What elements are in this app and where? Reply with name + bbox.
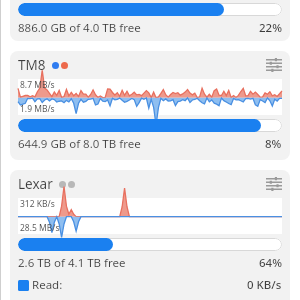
staticText: Lexar [18, 175, 53, 193]
button[interactable]: Lexar [18, 175, 282, 193]
button[interactable]: Settings [266, 57, 282, 73]
button[interactable]: 2.6 TB of 4.1 TB free [18, 255, 282, 271]
button[interactable] [18, 3, 282, 16]
staticText: 886.0 GB of 4.0 TB free [18, 20, 141, 36]
staticText: 312 KB/s [20, 198, 55, 210]
staticText: 1.9 MB/s [20, 103, 55, 115]
button[interactable] [18, 119, 282, 132]
button[interactable]: Read: [18, 277, 282, 293]
button[interactable] [18, 238, 282, 251]
button[interactable]: 312 KB/s [18, 198, 282, 234]
button[interactable]: 644.9 GB of 8.0 TB free [18, 136, 282, 152]
staticText: 644.9 GB of 8.0 TB free [18, 136, 141, 152]
staticText: 8% [265, 136, 282, 152]
staticText: 22% [259, 20, 282, 36]
button[interactable]: TM8 [18, 56, 282, 74]
button[interactable]: 886.0 GB of 4.0 TB free [10, 0, 290, 41]
staticText: 0 KB/s [247, 277, 282, 293]
staticText: TM8 [18, 56, 46, 74]
staticText: 64% [259, 255, 282, 271]
staticText: 28.5 MB/s [20, 222, 60, 234]
button[interactable]: Settings [266, 176, 282, 192]
staticText: 2.6 TB of 4.1 TB free [18, 255, 126, 271]
button[interactable]: 8.7 MB/s [18, 79, 282, 115]
staticText: 8.7 MB/s [20, 79, 55, 91]
staticText: Read: [32, 277, 63, 293]
button[interactable]: 886.0 GB of 4.0 TB free [18, 20, 282, 36]
